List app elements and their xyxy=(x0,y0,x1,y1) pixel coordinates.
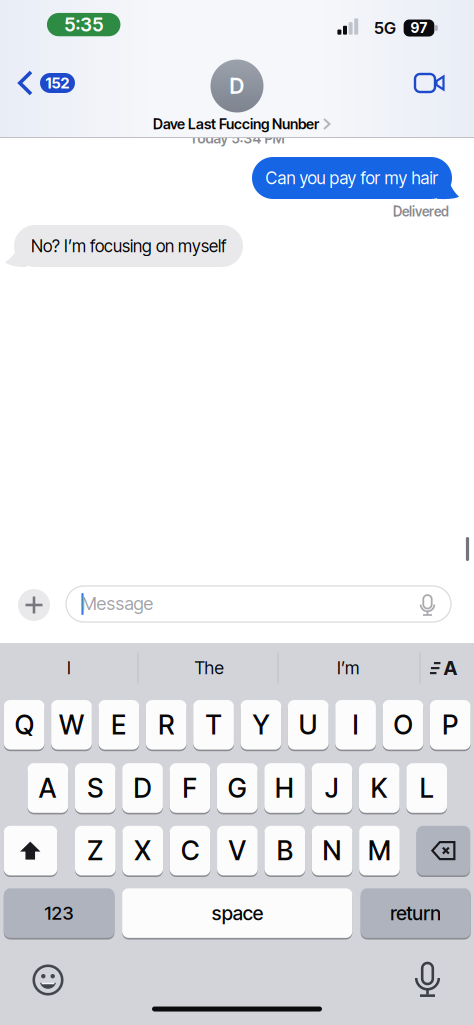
staticText: I’m xyxy=(337,657,359,678)
staticText: Q xyxy=(15,709,34,741)
staticText: K xyxy=(371,772,388,804)
staticText: F xyxy=(182,772,197,804)
button[interactable]: F xyxy=(170,762,210,814)
button[interactable]: M xyxy=(359,825,400,876)
staticText: B xyxy=(277,834,293,867)
staticText: I xyxy=(353,709,359,741)
button[interactable]: R xyxy=(146,699,187,751)
button[interactable]: I xyxy=(335,699,376,751)
staticText: T xyxy=(206,709,222,741)
button[interactable]: P xyxy=(430,699,471,751)
staticText: L xyxy=(420,772,434,804)
staticText: N xyxy=(323,834,342,867)
staticText: S xyxy=(87,772,103,804)
staticText: R xyxy=(158,709,174,741)
button[interactable]: C xyxy=(170,825,210,876)
button[interactable]: U xyxy=(288,699,329,751)
staticText: The xyxy=(194,657,223,678)
button[interactable]: Back xyxy=(17,71,75,95)
staticText: 5G xyxy=(374,18,396,38)
staticText: 97 xyxy=(410,19,427,36)
button[interactable]: L xyxy=(406,762,447,814)
button[interactable]: I xyxy=(9,648,129,688)
staticText: Delivered xyxy=(393,203,449,220)
button[interactable]: 123 xyxy=(4,887,114,939)
staticText: C xyxy=(181,834,199,867)
button[interactable]: W xyxy=(51,699,92,751)
staticText: P xyxy=(442,709,458,741)
button[interactable]: D xyxy=(122,762,163,814)
button[interactable]: space xyxy=(122,887,352,939)
staticText: J xyxy=(325,772,339,804)
button[interactable]: T xyxy=(193,699,234,751)
button[interactable]: S xyxy=(75,762,115,814)
button[interactable]: H xyxy=(264,762,305,814)
button[interactable]: Dictate xyxy=(416,594,438,618)
staticText: Y xyxy=(252,709,269,741)
staticText: G xyxy=(228,772,247,804)
button[interactable]: Apps xyxy=(18,589,50,621)
staticText: E xyxy=(111,709,126,741)
button[interactable]: X xyxy=(122,825,163,876)
staticText: I xyxy=(67,657,71,678)
button[interactable]: Shift xyxy=(4,825,57,876)
staticText: return xyxy=(390,901,441,925)
staticText: Message xyxy=(81,593,153,614)
button[interactable]: Delete xyxy=(417,825,470,876)
staticText: V xyxy=(228,834,246,867)
button[interactable]: A xyxy=(27,762,68,814)
staticText: W xyxy=(59,709,84,741)
staticText: U xyxy=(299,709,318,741)
staticText: 123 xyxy=(45,902,74,924)
button[interactable]: J xyxy=(312,762,352,814)
staticText: A xyxy=(443,656,457,680)
button[interactable]: return xyxy=(361,887,471,939)
button[interactable]: G xyxy=(217,762,258,814)
staticText: Dave Last Fuccing Nunber xyxy=(153,115,319,133)
staticText: space xyxy=(212,901,263,925)
button[interactable]: O xyxy=(383,699,423,751)
staticText: No? I’m focusing on myself xyxy=(31,236,226,256)
staticText: Z xyxy=(87,834,103,867)
button[interactable]: Z xyxy=(75,825,116,876)
staticText: O xyxy=(393,709,412,741)
button[interactable]: Emoji xyxy=(33,965,63,995)
button[interactable]: AutoFill xyxy=(426,654,460,681)
staticText: X xyxy=(134,834,151,867)
staticText: Today 5:34 PM xyxy=(189,130,284,147)
button[interactable]: Conversation details xyxy=(153,115,331,133)
staticText: D xyxy=(229,73,244,99)
button[interactable]: V xyxy=(217,825,258,876)
button[interactable]: Message text field xyxy=(66,586,451,622)
button[interactable]: Y xyxy=(241,699,281,751)
button[interactable]: Dave Last Fuccing Nunber, contact info xyxy=(210,59,263,112)
button[interactable]: FaceTime xyxy=(414,71,448,95)
button[interactable]: E xyxy=(98,699,139,751)
button[interactable]: N xyxy=(312,825,352,876)
button[interactable]: Dictation xyxy=(409,958,445,998)
staticText: 5:35 xyxy=(64,13,103,36)
button[interactable]: K xyxy=(359,762,400,814)
staticText: D xyxy=(134,772,152,804)
button[interactable]: Q xyxy=(4,699,44,751)
staticText: 152 xyxy=(45,74,69,92)
button[interactable]: B xyxy=(264,825,305,876)
staticText: A xyxy=(39,772,57,804)
staticText: Can you pay for my hair xyxy=(265,168,438,188)
button[interactable]: The xyxy=(149,648,269,688)
staticText: H xyxy=(275,772,294,804)
button[interactable]: I’m xyxy=(288,648,408,688)
staticText: M xyxy=(368,834,391,867)
